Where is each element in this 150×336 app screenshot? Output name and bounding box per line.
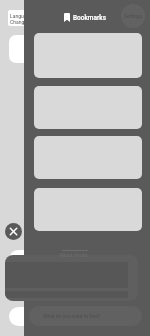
- staticText: Must Visits: [60, 252, 88, 258]
- button[interactable]: Bookmark item: [34, 188, 142, 231]
- button[interactable]: Must visit card: [5, 255, 138, 301]
- button[interactable]: Drawer pill: [9, 307, 39, 326]
- staticText: Settings: [124, 13, 143, 19]
- button[interactable]: Close navigation drawer: [5, 223, 22, 240]
- staticText: Change: [10, 19, 27, 25]
- staticText: Bookmarks: [73, 14, 107, 22]
- staticText: What do you want to find?: [43, 313, 101, 319]
- button[interactable]: Bookmark item: [34, 136, 142, 179]
- button[interactable]: Bookmark item: [34, 86, 142, 129]
- button[interactable]: Settings: [121, 4, 145, 28]
- button[interactable]: Drawer item: [9, 35, 39, 63]
- button[interactable]: Bookmark item: [34, 33, 142, 78]
- staticText: Language: [10, 13, 32, 19]
- button[interactable]: Drawer card: [9, 250, 43, 299]
